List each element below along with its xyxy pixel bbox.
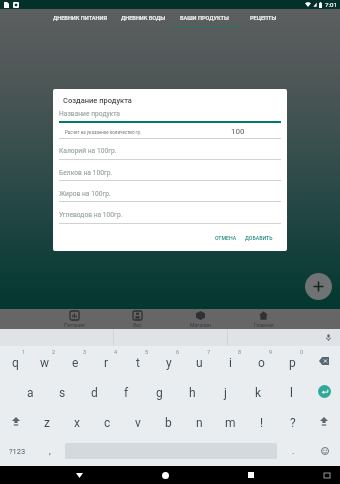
staticText: x [74,416,80,430]
button[interactable]: Shift [0,406,32,436]
staticText: Углеводов на 100гр. [59,211,123,219]
staticText: 9 [269,349,273,355]
staticText: d [91,386,98,400]
button[interactable]: l [275,376,308,406]
staticText: g [156,386,163,400]
button[interactable]: n [184,406,215,436]
button[interactable]: Питание [43,309,106,329]
button[interactable]: d [78,376,110,406]
staticText: 2 [52,349,56,355]
button[interactable]: Screenshot [314,466,340,484]
staticText: h [189,386,196,400]
button[interactable]: Home [147,466,183,484]
staticText: Главная [254,322,274,328]
button[interactable]: h [176,376,209,406]
button[interactable]: Emoji [310,436,340,466]
staticText: , [49,446,51,457]
staticText: 7 [207,349,211,355]
staticText: v [135,416,141,430]
button[interactable]: Voice input [325,334,332,341]
staticText: k [255,386,262,400]
button[interactable]: ДНЕВНИК ПИТАНИЯ [45,9,115,28]
button[interactable]: Recent apps [233,466,269,484]
staticText: ? [290,416,296,430]
button[interactable]: Главная [232,309,295,329]
staticText: ДОБАВИТЬ [245,235,273,241]
staticText: 4 [114,349,118,355]
button[interactable]: y [153,346,184,376]
staticText: c [104,416,111,430]
staticText: i [229,356,232,370]
button[interactable]: w [30,346,60,376]
staticText: q [12,356,19,370]
button[interactable]: Вес [106,309,169,329]
staticText: ?123 [9,447,26,456]
button[interactable]: , [35,436,65,466]
button[interactable]: k [242,376,275,406]
button[interactable]: Add product [305,273,332,300]
staticText: b [165,416,172,430]
staticText: Питание [64,322,85,328]
staticText: 100 [231,127,245,136]
staticText: 0 [300,349,304,355]
staticText: a [27,386,34,400]
button[interactable]: Shift [308,406,340,436]
staticText: ДНЕВНИК ПИТАНИЯ [53,15,107,22]
button[interactable]: v [122,406,153,436]
staticText: 1 [22,349,26,355]
staticText: y [166,356,172,370]
button[interactable]: ? [277,406,308,436]
button[interactable]: o [246,346,277,376]
button[interactable]: Enter [308,376,340,406]
button[interactable]: p [277,346,308,376]
button[interactable]: s [46,376,78,406]
button[interactable]: x [62,406,92,436]
staticText: 8 [238,349,242,355]
staticText: w [40,356,50,370]
staticText: ДНЕВНИК ВОДЫ [121,15,166,22]
button[interactable]: t [122,346,153,376]
staticText: ! [260,416,264,430]
staticText: Магазин [190,322,211,328]
staticText: 5 [145,349,149,355]
button[interactable]: Back [61,466,97,484]
button[interactable]: q [0,346,30,376]
button[interactable]: Backspace [308,346,340,376]
button[interactable]: m [215,406,246,436]
button[interactable]: r [91,346,122,376]
staticText: Расчет на указанное количество гр. [65,130,142,135]
button[interactable]: j [209,376,242,406]
button[interactable]: b [153,406,184,436]
staticText: r [104,356,109,370]
staticText: Белков на 100гр. [59,169,113,177]
button[interactable]: z [32,406,62,436]
button[interactable]: Магазин [169,309,232,329]
button[interactable]: ?123 [0,436,35,466]
button[interactable]: ВАШИ ПРОДУКТЫ [173,9,239,28]
staticText: Вес [133,322,142,328]
button[interactable]: u [184,346,215,376]
button[interactable]: ОТМЕНА [212,231,240,244]
button[interactable]: a [14,376,46,406]
staticText: o [258,356,265,370]
staticText: m [225,416,236,430]
button[interactable]: c [92,406,122,436]
staticText: n [196,416,203,430]
button[interactable]: ДОБАВИТЬ [242,231,276,244]
button[interactable]: g [143,376,176,406]
staticText: u [196,356,203,370]
button[interactable]: e [60,346,91,376]
button[interactable]: f [110,376,143,406]
button[interactable]: i [215,346,246,376]
button[interactable]: РЕЦЕПТЫ [239,9,285,28]
button[interactable]: ! [246,406,277,436]
staticText: Создание продукта [63,96,132,105]
staticText: 3 [83,349,87,355]
staticText: ОТМЕНА [215,235,237,241]
staticText: . [292,446,295,457]
button[interactable]: ДНЕВНИК ВОДЫ [115,9,173,28]
staticText: Калорий на 100гр. [59,147,117,155]
staticText: s [59,386,66,400]
